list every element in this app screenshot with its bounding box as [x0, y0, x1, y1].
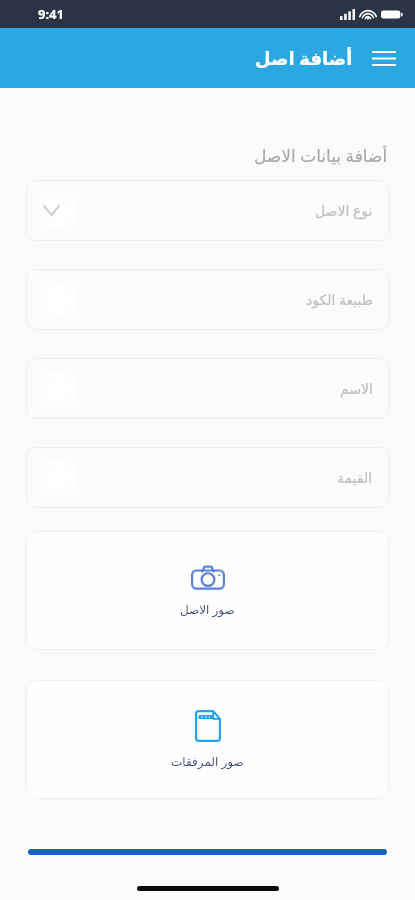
staticText: القيمة: [337, 470, 373, 486]
staticText: أضافة بيانات الاصل: [254, 144, 388, 167]
button[interactable]: Save: [28, 849, 387, 855]
staticText: صور المرفقات: [171, 753, 244, 769]
staticText: أضافة اصل: [255, 46, 353, 71]
staticText: صور الاصل: [180, 601, 235, 617]
button[interactable]: الاسم: [26, 358, 389, 419]
button[interactable]: نوع الاصل: [26, 180, 389, 241]
staticText: الاسم: [340, 381, 373, 397]
button[interactable]: طبيعة الكود: [26, 269, 389, 330]
button[interactable]: صور المرفقات: [26, 680, 389, 799]
button[interactable]: صور الاصل: [26, 531, 389, 650]
staticText: 9:41: [38, 5, 64, 23]
button[interactable]: Menu: [367, 41, 401, 75]
staticText: طبيعة الكود: [306, 290, 373, 309]
button[interactable]: القيمة: [26, 447, 389, 508]
staticText: نوع الاصل: [315, 201, 373, 220]
